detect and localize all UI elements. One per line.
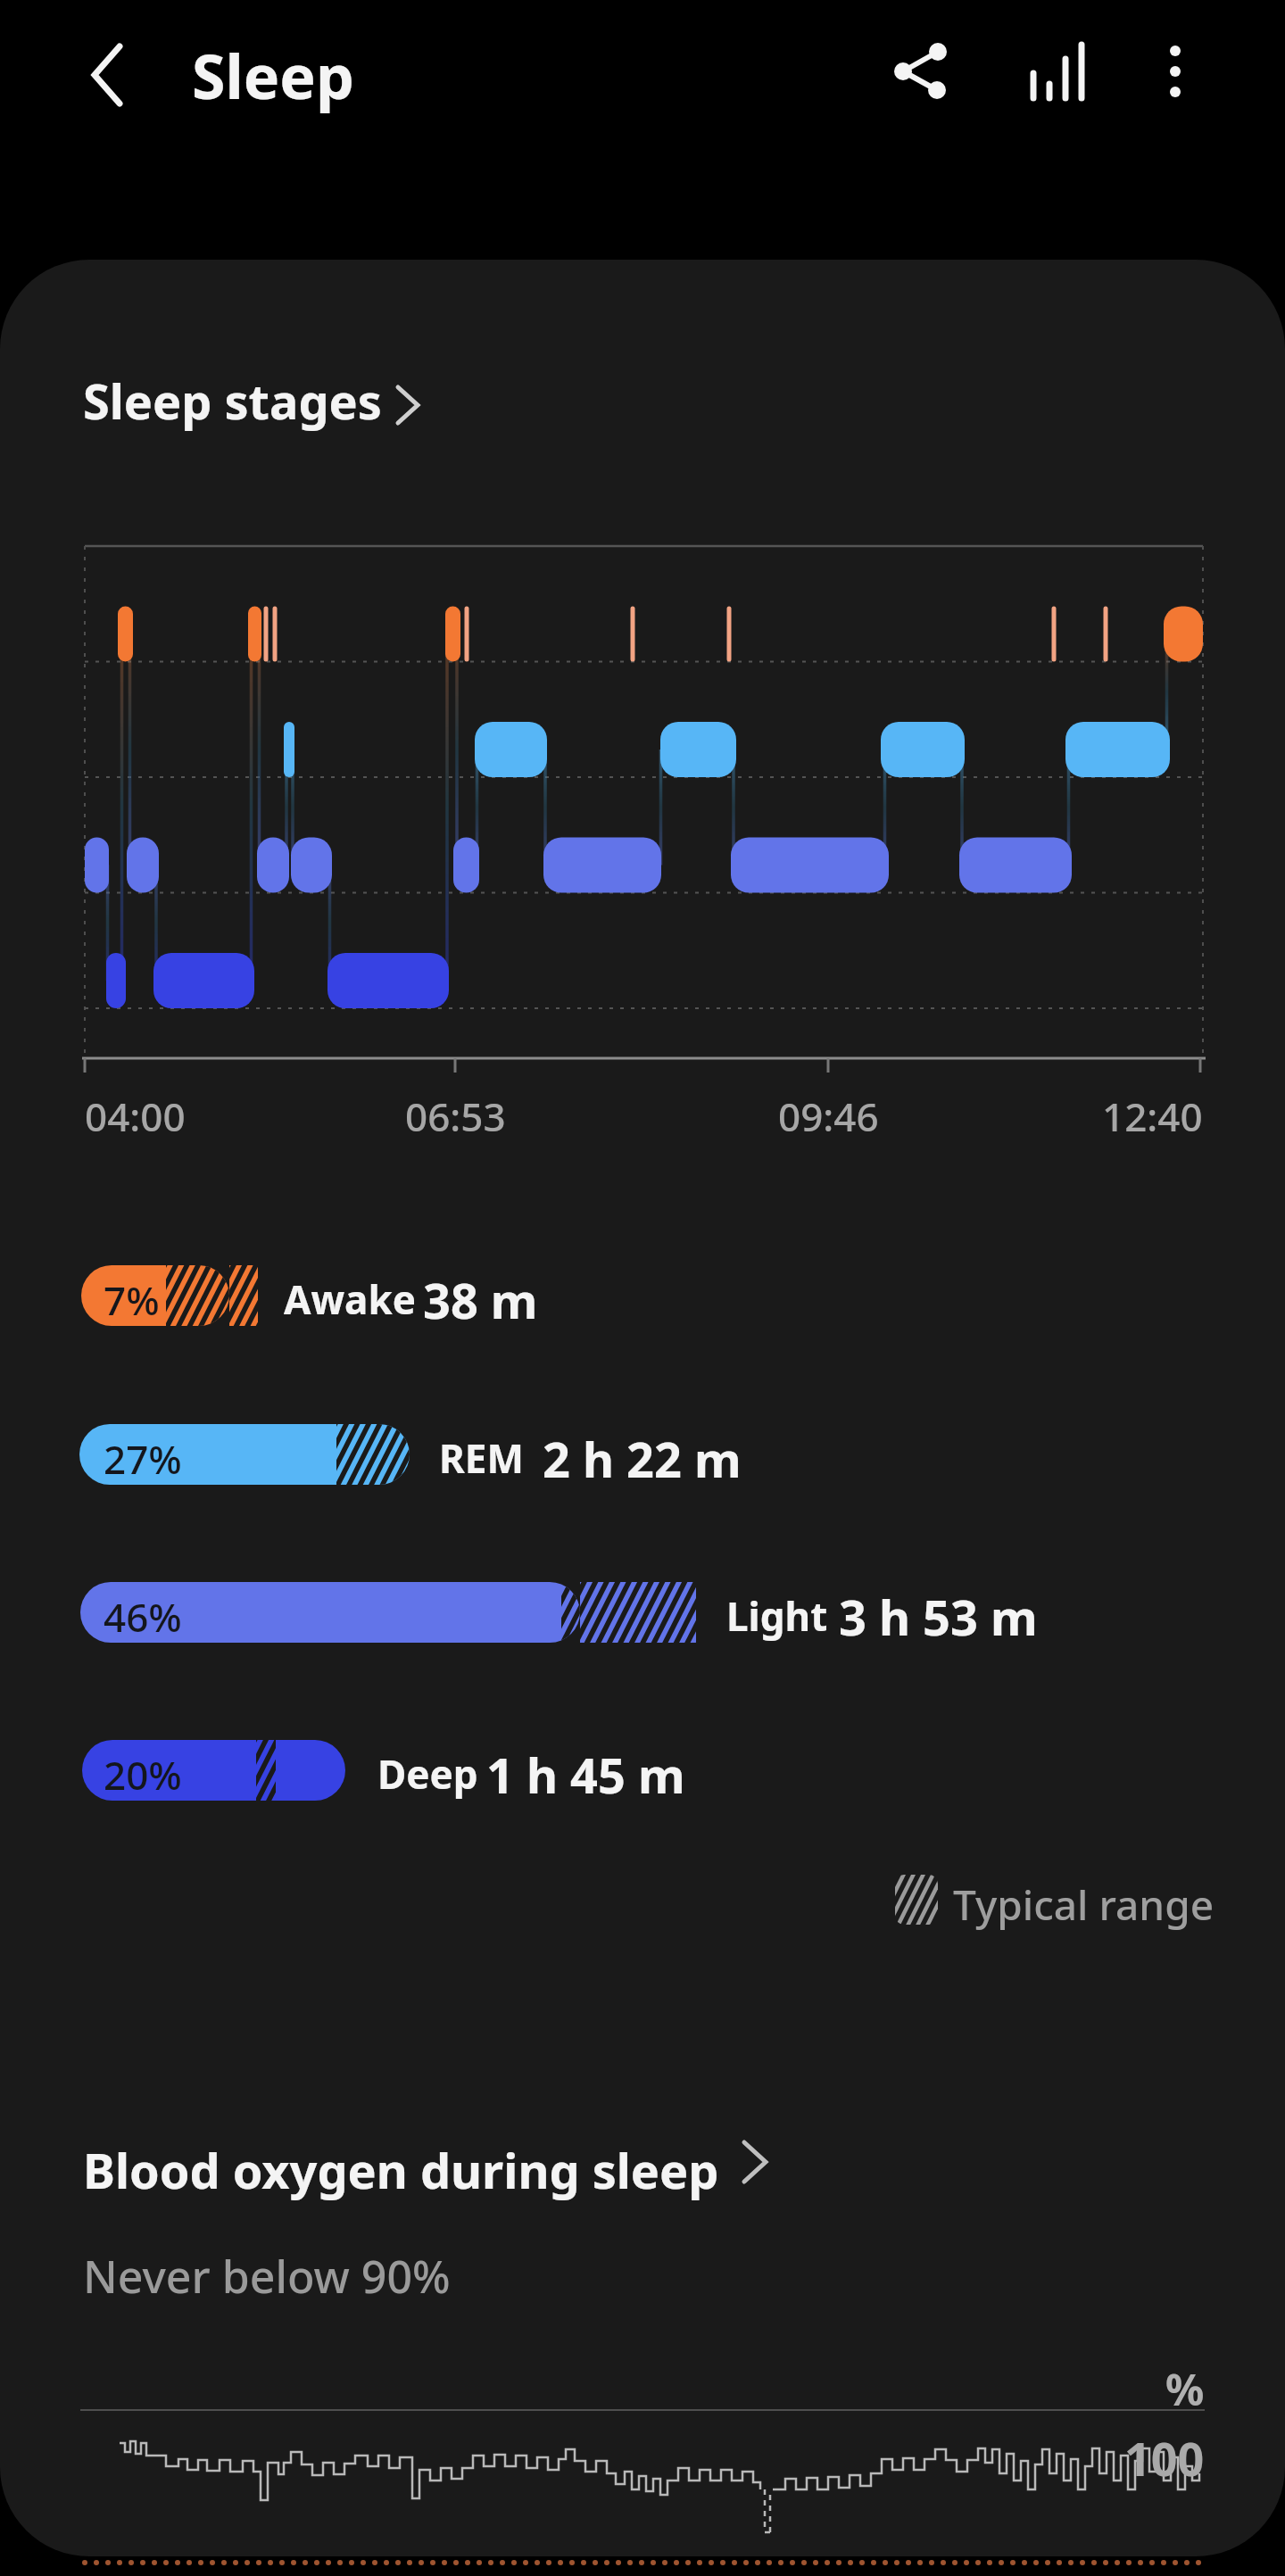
button[interactable] <box>71 36 143 116</box>
staticText: Typical range <box>953 1876 1215 1933</box>
button[interactable] <box>1017 36 1098 116</box>
staticText: 20% <box>104 1748 182 1802</box>
staticText: 1 h 45 m <box>486 1742 685 1808</box>
staticText: 04:00 <box>85 1089 186 1143</box>
staticText: % <box>1165 2360 1205 2418</box>
button[interactable] <box>80 2124 741 2208</box>
staticText: 7% <box>104 1273 160 1327</box>
staticText: 06:53 <box>405 1089 506 1143</box>
staticText: 100 <box>1124 2426 1205 2489</box>
button[interactable] <box>80 352 428 437</box>
staticText: Awake <box>284 1272 417 1326</box>
button[interactable] <box>879 36 959 116</box>
staticText: Never below 90% <box>83 2246 451 2307</box>
staticText: 27% <box>104 1432 182 1486</box>
staticText: Sleep stages <box>83 368 382 434</box>
staticText: Blood oxygen during sleep <box>83 2137 719 2203</box>
staticText: 3 h 53 m <box>839 1584 1038 1650</box>
staticText: Deep <box>377 1747 478 1801</box>
staticText: Sleep <box>192 34 354 117</box>
staticText: 46% <box>104 1590 182 1644</box>
button[interactable] <box>1147 36 1209 116</box>
staticText: 12:40 <box>1102 1089 1203 1143</box>
staticText: Light <box>726 1589 828 1643</box>
staticText: REM <box>439 1431 524 1485</box>
staticText: 09:46 <box>778 1089 879 1143</box>
staticText: 2 h 22 m <box>543 1426 742 1492</box>
staticText: 38 m <box>423 1267 538 1333</box>
